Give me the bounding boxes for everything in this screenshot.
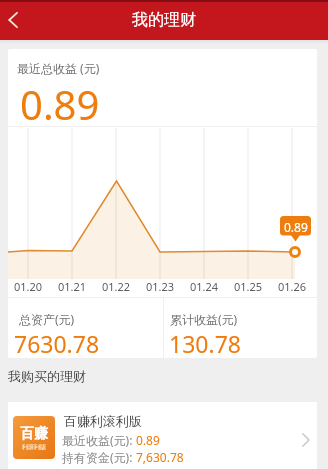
staticText: 总资产(元) <box>19 311 75 327</box>
staticText: 我购买的理财 <box>8 368 86 384</box>
staticText: 0.89 <box>20 77 100 131</box>
button[interactable] <box>0 0 36 40</box>
button[interactable]: 最近总收益 (元) <box>8 49 317 358</box>
staticText: 7,630.78 <box>136 449 184 465</box>
staticText: 0.89 <box>284 219 308 235</box>
staticText: 7630.78 <box>14 328 100 358</box>
staticText: 01.21 <box>58 279 87 294</box>
staticText: 01.20 <box>14 279 43 294</box>
staticText: 01.24 <box>190 279 219 294</box>
button[interactable]: 百赚 <box>8 402 317 469</box>
staticText: 持有资金(元): <box>62 449 136 465</box>
staticText: 01.26 <box>278 279 307 294</box>
staticText: 百赚利滚利版 <box>64 413 142 429</box>
staticText: 0.89 <box>136 432 160 448</box>
staticText: 130.78 <box>169 328 241 358</box>
staticText: 最近收益(元): <box>62 432 136 448</box>
staticText: 累计收益(元) <box>170 311 238 327</box>
staticText: 百赚 <box>20 425 48 443</box>
staticText: 最近总收益 (元) <box>17 60 100 76</box>
staticText: 利滚利版 <box>22 443 46 451</box>
staticText: 我的理财 <box>132 10 196 30</box>
staticText: 01.25 <box>234 279 263 294</box>
staticText: 01.22 <box>102 279 131 294</box>
staticText: 01.23 <box>146 279 175 294</box>
